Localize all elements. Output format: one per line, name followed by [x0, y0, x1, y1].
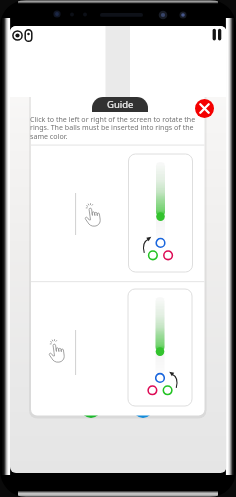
- button[interactable]: Close guide: [195, 99, 214, 118]
- button[interactable]: Guide: [92, 97, 148, 112]
- staticText: Click to the left or right of the screen…: [30, 114, 207, 141]
- staticText: Guide: [107, 98, 134, 111]
